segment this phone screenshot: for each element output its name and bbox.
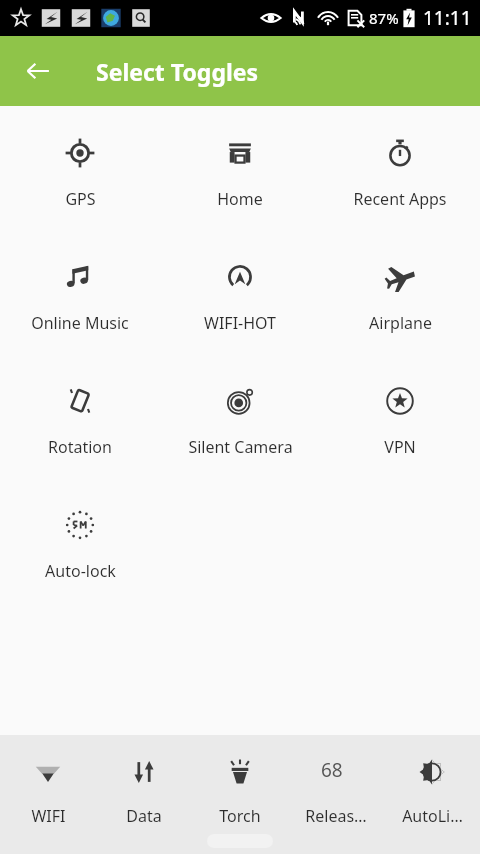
staticText: Select Toggles <box>96 56 259 87</box>
staticText: Recent Apps <box>353 188 447 210</box>
staticText: 87% <box>369 8 399 28</box>
staticText: Online Music <box>31 312 129 334</box>
button[interactable]: Back <box>14 47 62 95</box>
button[interactable]: WIFI <box>0 735 96 854</box>
button[interactable]: Rotation <box>0 368 160 492</box>
button[interactable]: Recent Apps <box>320 120 480 244</box>
button[interactable]: WIFI-HOT <box>160 244 320 368</box>
staticText: Torch <box>219 805 261 827</box>
staticText: Airplane <box>369 312 432 334</box>
staticText: 68% <box>321 757 351 787</box>
button[interactable]: 68% <box>288 735 384 854</box>
button[interactable]: Auto-lock <box>0 492 160 616</box>
button[interactable]: Torch <box>192 735 288 854</box>
button[interactable]: Silent Camera <box>160 368 320 492</box>
staticText: GPS <box>65 188 96 210</box>
staticText: WIFI <box>31 805 66 827</box>
staticText: Releas… <box>305 805 367 827</box>
button[interactable]: AutoLi… <box>384 735 480 854</box>
button[interactable]: Home <box>160 120 320 244</box>
staticText: Silent Camera <box>188 436 293 458</box>
button[interactable]: VPN <box>320 368 480 492</box>
staticText: AutoLi… <box>402 805 463 827</box>
button[interactable]: Airplane <box>320 244 480 368</box>
staticText: VPN <box>384 436 416 458</box>
staticText: Home <box>217 188 263 210</box>
staticText: 11:11 <box>423 5 472 31</box>
button[interactable]: GPS <box>0 120 160 244</box>
staticText: Data <box>126 805 162 827</box>
staticText: Auto-lock <box>45 560 116 582</box>
staticText: WIFI-HOT <box>204 312 276 334</box>
button[interactable]: Online Music <box>0 244 160 368</box>
button[interactable]: Data <box>96 735 192 854</box>
staticText: Rotation <box>48 436 112 458</box>
